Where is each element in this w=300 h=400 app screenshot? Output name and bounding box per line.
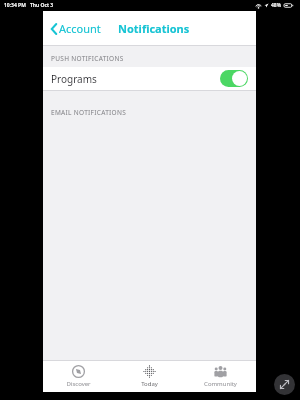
button[interactable]: Community	[185, 361, 256, 392]
button[interactable]: Discover	[43, 361, 114, 392]
staticText: 10:34 PM	[4, 2, 26, 9]
staticText: PUSH NOTIFICATIONS	[51, 54, 124, 63]
staticText: 48%	[271, 2, 282, 9]
button[interactable]: Account	[49, 17, 103, 40]
staticText: Notifications	[118, 21, 190, 36]
button[interactable]: Programs push notifications toggle	[220, 70, 248, 87]
button[interactable]: Today	[114, 361, 185, 392]
staticText: Thu Oct 3	[30, 2, 54, 9]
button[interactable]: Resize	[274, 374, 295, 395]
staticText: Account	[59, 21, 101, 36]
staticText: Today	[141, 380, 158, 388]
staticText: Community	[204, 380, 237, 388]
button[interactable]: Programs	[43, 67, 256, 90]
staticText: EMAIL NOTIFICATIONS	[51, 108, 127, 117]
staticText: Discover	[66, 380, 91, 388]
staticText: Programs	[51, 72, 97, 86]
